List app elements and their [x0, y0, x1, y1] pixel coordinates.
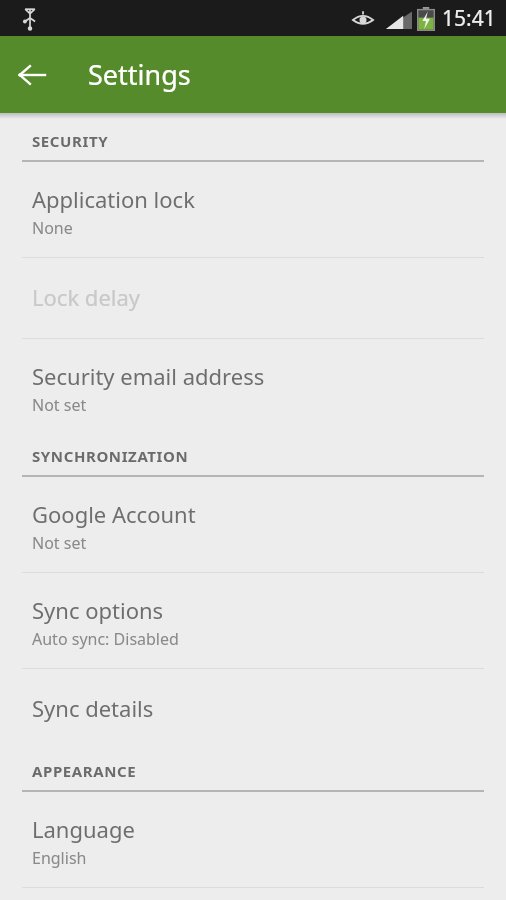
staticText: SECURITY — [32, 131, 109, 151]
staticText: APPEARANCE — [32, 761, 137, 781]
button[interactable]: Google Account — [0, 477, 506, 572]
staticText: SYNCHRONIZATION — [32, 446, 189, 466]
staticText: Application lock — [32, 184, 195, 214]
button: Lock delay — [0, 258, 506, 338]
staticText: English — [32, 847, 87, 869]
staticText: Settings — [88, 56, 191, 93]
staticText: Sync options — [32, 595, 164, 625]
staticText: Sync details — [32, 693, 154, 723]
staticText: Auto sync: Disabled — [32, 628, 179, 650]
staticText: 15:41 — [442, 4, 496, 33]
button[interactable]: Sync details — [0, 669, 506, 749]
staticText: Language — [32, 814, 135, 844]
button[interactable]: Security email address — [0, 339, 506, 434]
staticText: Not set — [32, 394, 87, 416]
button[interactable]: Language — [0, 792, 506, 887]
button[interactable]: Back — [0, 43, 64, 107]
staticText: None — [32, 217, 73, 239]
staticText: Lock delay — [32, 282, 141, 312]
button[interactable]: Application lock — [0, 162, 506, 257]
staticText: Google Account — [32, 499, 196, 529]
staticText: Security email address — [32, 361, 265, 391]
staticText: Not set — [32, 532, 87, 554]
button[interactable]: Sync options — [0, 573, 506, 668]
